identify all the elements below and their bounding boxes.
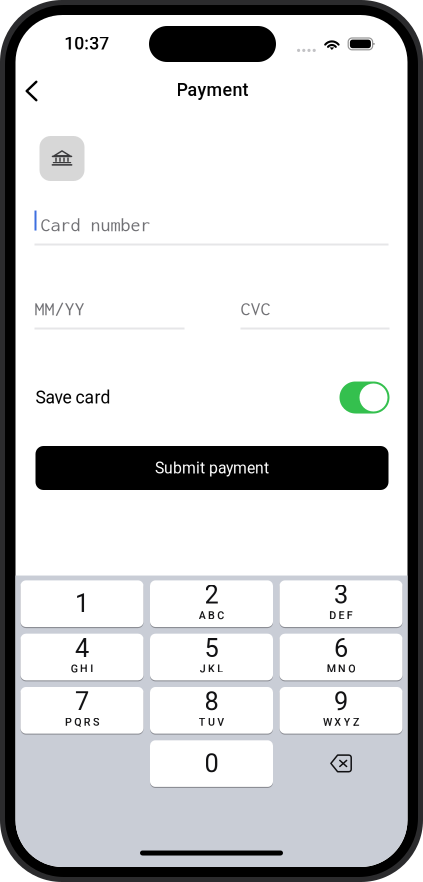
button[interactable]: Save card <box>35 378 389 416</box>
staticText: B <box>208 609 215 622</box>
staticText: C <box>217 609 224 622</box>
button[interactable]: 7 <box>20 686 143 734</box>
button[interactable]: 5 <box>150 633 273 681</box>
staticText: 8 <box>204 687 218 716</box>
staticText: V <box>217 716 224 728</box>
button[interactable]: 8 <box>150 686 273 734</box>
staticText: 10:37 <box>64 33 109 54</box>
staticText: L <box>217 663 223 675</box>
staticText: M <box>327 663 336 675</box>
staticText: K <box>208 663 215 675</box>
staticText: Y <box>344 716 351 728</box>
staticText: Q <box>74 716 81 728</box>
staticText: 7 <box>75 687 89 716</box>
staticText: U <box>208 716 215 728</box>
staticText: 3 <box>334 580 348 610</box>
staticText: Z <box>353 716 359 728</box>
staticText: Submit payment <box>155 459 269 477</box>
button[interactable]: CVC <box>240 287 389 329</box>
staticText: Card number <box>40 214 150 235</box>
staticText: 4 <box>75 633 89 663</box>
staticText: O <box>348 663 355 675</box>
button[interactable]: MM/YY <box>34 287 184 329</box>
staticText: D <box>329 609 336 622</box>
button[interactable]: Submit payment <box>35 446 388 490</box>
staticText: 0 <box>204 749 218 778</box>
button[interactable]: 6 <box>279 633 402 681</box>
staticText: A <box>199 609 206 622</box>
button[interactable]: 4 <box>20 633 143 681</box>
staticText: 1 <box>75 589 89 619</box>
button[interactable]: Delete <box>279 740 402 787</box>
button[interactable]: 0 <box>150 740 273 787</box>
staticText: R <box>84 716 91 728</box>
button[interactable]: Bank account <box>39 136 84 181</box>
staticText: 6 <box>334 633 348 663</box>
staticText: P <box>65 716 72 728</box>
staticText: CVC <box>240 298 270 319</box>
staticText: H <box>80 663 88 675</box>
button[interactable]: 1 <box>20 580 143 628</box>
staticText: G <box>71 663 78 675</box>
staticText: 5 <box>204 633 218 663</box>
staticText: T <box>199 716 206 728</box>
button[interactable]: Card number <box>34 203 388 245</box>
staticText: E <box>338 609 344 622</box>
staticText: 2 <box>204 580 218 610</box>
staticText: Save card <box>35 387 110 408</box>
staticText: MM/YY <box>34 298 84 319</box>
staticText: F <box>347 609 353 622</box>
button[interactable]: 2 <box>150 580 273 628</box>
staticText: 9 <box>334 687 348 716</box>
staticText: Payment <box>176 79 248 100</box>
staticText: S <box>93 716 99 728</box>
button[interactable]: 3 <box>279 580 402 628</box>
staticText: N <box>338 663 346 675</box>
staticText: W <box>323 716 332 728</box>
staticText: I <box>90 663 93 675</box>
button[interactable]: Back <box>9 69 53 113</box>
staticText: X <box>334 716 341 728</box>
button[interactable]: 9 <box>279 686 402 734</box>
staticText: J <box>200 663 206 675</box>
